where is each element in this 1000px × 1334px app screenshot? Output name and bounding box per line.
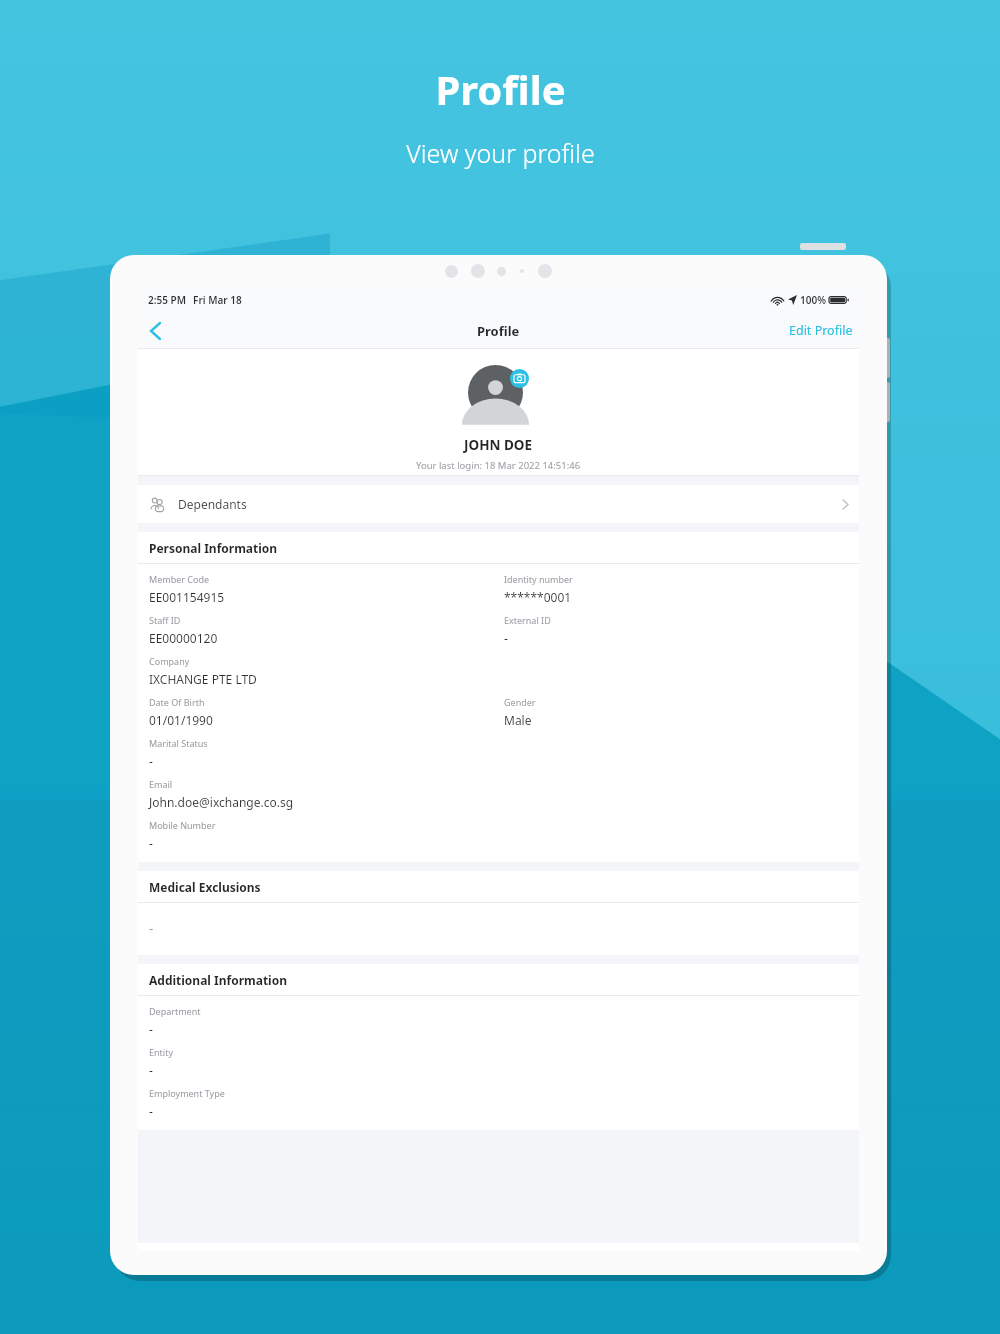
staticText: Personal Information bbox=[149, 540, 278, 556]
staticText: - bbox=[149, 1021, 153, 1037]
staticText: 2:55 PM bbox=[148, 293, 186, 307]
staticText: Identity number bbox=[504, 573, 573, 585]
staticText: Gender bbox=[504, 696, 536, 708]
button[interactable]: Back bbox=[138, 314, 172, 348]
staticText: IXCHANGE PTE LTD bbox=[149, 671, 257, 687]
staticText: Fri Mar 18 bbox=[193, 293, 242, 307]
staticText: Entity bbox=[149, 1046, 173, 1058]
staticText: Medical Exclusions bbox=[149, 879, 261, 895]
staticText: Department bbox=[149, 1005, 201, 1017]
staticText: Member Code bbox=[149, 573, 210, 585]
staticText: Marital Status bbox=[149, 737, 208, 749]
staticText: 01/01/1990 bbox=[149, 712, 213, 728]
staticText: Staff ID bbox=[149, 614, 181, 626]
staticText: Dependants bbox=[178, 496, 247, 512]
staticText: Mobile Number bbox=[149, 819, 216, 831]
staticText: View your profile bbox=[406, 136, 595, 170]
staticText: Additional Information bbox=[149, 972, 288, 988]
staticText: ******0001 bbox=[504, 589, 572, 605]
staticText: - bbox=[504, 630, 508, 646]
staticText: External ID bbox=[504, 614, 551, 626]
staticText: EE00000120 bbox=[149, 630, 218, 646]
staticText: - bbox=[149, 753, 153, 769]
staticText: Profile bbox=[477, 322, 520, 340]
staticText: - bbox=[149, 1103, 153, 1119]
staticText: Profile bbox=[435, 62, 566, 116]
button[interactable]: Change photo bbox=[510, 369, 529, 388]
button[interactable]: Dependants bbox=[138, 485, 859, 523]
staticText: Edit Profile bbox=[789, 322, 853, 339]
staticText: Your last login: 18 Mar 2022 14:51:46 bbox=[416, 459, 581, 472]
staticText: Company bbox=[149, 655, 190, 667]
staticText: - bbox=[149, 1062, 153, 1078]
staticText: EE001154915 bbox=[149, 589, 225, 605]
button[interactable]: Edit Profile bbox=[783, 316, 859, 345]
staticText: Employment Type bbox=[149, 1087, 225, 1099]
staticText: Male bbox=[504, 712, 532, 728]
staticText: John.doe@ixchange.co.sg bbox=[149, 794, 294, 810]
staticText: Email bbox=[149, 778, 173, 790]
staticText: Date Of Birth bbox=[149, 696, 205, 708]
staticText: JOHN DOE bbox=[464, 436, 533, 454]
staticText: - bbox=[149, 835, 153, 851]
staticText: 100% bbox=[800, 293, 826, 307]
staticText: - bbox=[149, 919, 154, 937]
